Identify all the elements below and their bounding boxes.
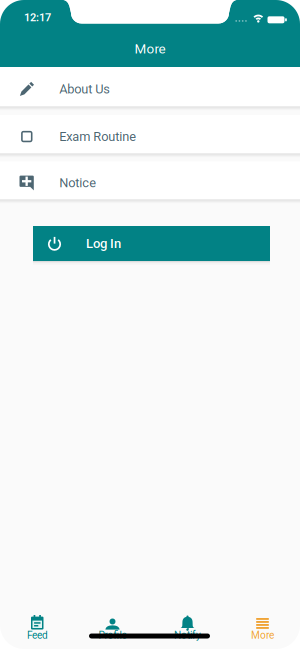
button[interactable]: Exam Routine: [0, 115, 300, 153]
staticText: Log In: [86, 236, 121, 251]
button[interactable]: About Us: [0, 67, 300, 106]
staticText: More: [134, 41, 165, 57]
staticText: Profile: [98, 629, 126, 641]
staticText: About Us: [59, 81, 110, 96]
button[interactable]: Feed: [0, 603, 75, 649]
button[interactable]: Notice: [0, 161, 300, 199]
staticText: Notice: [59, 175, 96, 190]
button[interactable]: Profile: [75, 603, 150, 649]
staticText: 12:17: [24, 11, 51, 24]
staticText: Exam Routine: [59, 129, 136, 144]
button[interactable]: Notify: [150, 603, 225, 649]
staticText: Notify: [174, 629, 201, 641]
staticText: More: [251, 629, 274, 641]
button[interactable]: Log In: [33, 226, 270, 261]
button[interactable]: More: [225, 603, 300, 649]
staticText: Feed: [27, 629, 48, 641]
